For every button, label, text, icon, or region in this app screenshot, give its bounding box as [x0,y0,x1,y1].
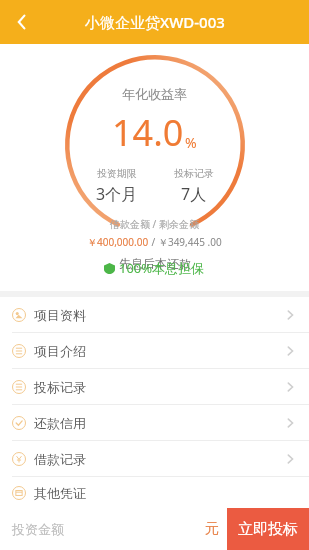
button[interactable]: 立即投标 [227,508,309,550]
staticText: 借款记录 [34,451,86,467]
staticText: 项目资料 [34,307,86,323]
staticText: 7人 [181,183,207,205]
staticText: ￥400,000.00 [87,235,149,249]
staticText: 还款信用 [34,415,86,431]
staticText: 项目介绍 [34,343,86,359]
staticText: 投标记录 [174,167,214,180]
button[interactable]: 投资金额 [0,508,227,550]
staticText: 投标记录 [34,379,86,395]
button[interactable]: 项目资料 [0,297,309,332]
button[interactable]: 投标记录 [0,369,309,404]
staticText: 100%本息担保 [119,259,205,277]
staticText: 投资期限 [97,167,137,180]
staticText: 小微企业贷XWD-003 [85,12,225,32]
staticText: / ￥349,445 .00 [149,235,222,249]
button[interactable]: Back [0,0,44,44]
staticText: 立即投标 [238,520,298,539]
staticText: 年化收益率 [122,86,187,102]
button[interactable]: 项目介绍 [0,333,309,368]
staticText: 元 [205,520,219,538]
button[interactable]: 其他凭证 [0,477,309,508]
staticText: 其他凭证 [34,485,86,501]
button[interactable]: 还款信用 [0,405,309,440]
staticText: 借款金额 / 剩余金额 [110,217,199,231]
staticText: 3个月 [96,183,138,205]
staticText: 投资金额 [12,521,64,537]
staticText: % [185,133,197,152]
staticText: 先息后本还款 [119,256,191,271]
staticText: 14.0 [112,108,184,157]
button[interactable]: 借款记录 [0,441,309,476]
